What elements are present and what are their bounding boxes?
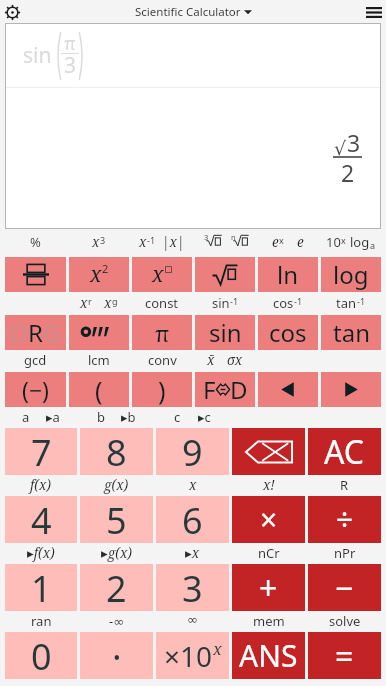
button[interactable]: [69, 315, 129, 350]
staticText: ▸g(x): [101, 544, 132, 562]
button[interactable]: sin: [195, 315, 255, 350]
button[interactable]: [232, 428, 305, 475]
button[interactable]: [195, 257, 255, 292]
staticText: (−): [22, 374, 49, 405]
staticText: ): [158, 373, 166, 407]
button[interactable]: ÷: [308, 496, 381, 543]
button[interactable]: 8: [80, 428, 153, 475]
staticText: ∞: [187, 612, 198, 627]
staticText: lcm: [88, 351, 110, 369]
button[interactable]: Settings: [2, 2, 22, 22]
staticText: x: [104, 294, 112, 312]
staticText: (: [95, 373, 103, 407]
staticText: e: [272, 233, 279, 251]
button[interactable]: sin: [5, 23, 381, 229]
button[interactable]: [5, 257, 66, 292]
staticText: 8: [106, 428, 127, 475]
button[interactable]: ANS: [232, 632, 305, 679]
staticText: mem: [253, 612, 285, 630]
staticText: -1: [294, 295, 303, 307]
staticText: D: [230, 373, 248, 406]
button[interactable]: −: [308, 564, 381, 611]
staticText: nCr: [258, 544, 280, 562]
button[interactable]: 3: [156, 564, 229, 611]
button[interactable]: x: [69, 257, 129, 292]
staticText: -1: [230, 295, 239, 307]
staticText: =: [335, 634, 354, 678]
button[interactable]: Scientific Calculator: [135, 4, 252, 20]
button[interactable]: D: [5, 315, 66, 350]
staticText: -∞: [109, 612, 125, 630]
button[interactable]: +: [232, 564, 305, 611]
staticText: conv: [148, 351, 177, 369]
button[interactable]: 2: [80, 564, 153, 611]
staticText: ran: [31, 612, 52, 630]
staticText: sin: [209, 316, 242, 349]
staticText: F: [203, 373, 216, 406]
staticText: 2: [341, 157, 355, 188]
staticText: σx: [227, 351, 243, 369]
staticText: e: [297, 233, 304, 251]
staticText: a: [370, 239, 376, 251]
staticText: -1: [357, 295, 366, 307]
staticText: G: [43, 316, 61, 349]
staticText: ANS: [239, 635, 298, 676]
button[interactable]: ×10: [156, 632, 229, 679]
staticText: x: [80, 294, 88, 312]
button[interactable]: log: [321, 257, 381, 292]
staticText: ▸a: [46, 408, 60, 426]
button[interactable]: 9: [156, 428, 229, 475]
button[interactable]: tan: [321, 315, 381, 350]
button[interactable]: ln: [258, 257, 318, 292]
staticText: %: [30, 233, 41, 251]
button[interactable]: AC: [308, 428, 381, 475]
staticText: g(x): [104, 476, 129, 494]
button[interactable]: x: [132, 257, 192, 292]
staticText: x: [213, 638, 222, 660]
button[interactable]: (−): [5, 372, 66, 407]
button[interactable]: ·: [80, 632, 153, 679]
staticText: sin: [23, 41, 52, 70]
button[interactable]: (: [69, 372, 129, 407]
button[interactable]: [258, 372, 318, 407]
button[interactable]: F: [195, 372, 255, 407]
staticText: 3: [100, 234, 106, 246]
staticText: solve: [329, 612, 361, 630]
button[interactable]: 7: [5, 428, 77, 475]
staticText: ▸x: [185, 544, 200, 562]
staticText: ×10: [164, 637, 213, 675]
button[interactable]: ): [132, 372, 192, 407]
button[interactable]: ×: [232, 496, 305, 543]
staticText: |x|: [162, 233, 185, 251]
button[interactable]: [321, 372, 381, 407]
staticText: cos: [269, 316, 307, 349]
staticText: a: [22, 408, 30, 426]
staticText: n: [231, 232, 236, 242]
staticText: log: [350, 233, 370, 251]
staticText: g: [112, 295, 118, 307]
button[interactable]: 1: [5, 564, 77, 611]
staticText: b: [97, 408, 105, 426]
button[interactable]: =: [308, 632, 381, 679]
staticText: ×: [260, 499, 278, 540]
button[interactable]: 0: [5, 632, 77, 679]
staticText: gcd: [24, 351, 47, 369]
staticText: R: [28, 316, 43, 349]
staticText: 3: [204, 232, 209, 242]
staticText: R: [340, 476, 349, 494]
staticText: D: [10, 316, 28, 349]
staticText: 3: [64, 51, 77, 80]
staticText: 0: [31, 632, 52, 679]
button[interactable]: 6: [156, 496, 229, 543]
staticText: 5: [106, 496, 127, 543]
button[interactable]: 5: [80, 496, 153, 543]
staticText: −: [335, 566, 354, 610]
button[interactable]: 4: [5, 496, 77, 543]
button[interactable]: Menu: [364, 2, 384, 22]
staticText: x: [152, 260, 164, 289]
staticText: AC: [324, 430, 365, 474]
button[interactable]: π: [132, 315, 192, 350]
button[interactable]: cos: [258, 315, 318, 350]
staticText: 2: [102, 261, 109, 276]
staticText: ln: [277, 258, 299, 291]
